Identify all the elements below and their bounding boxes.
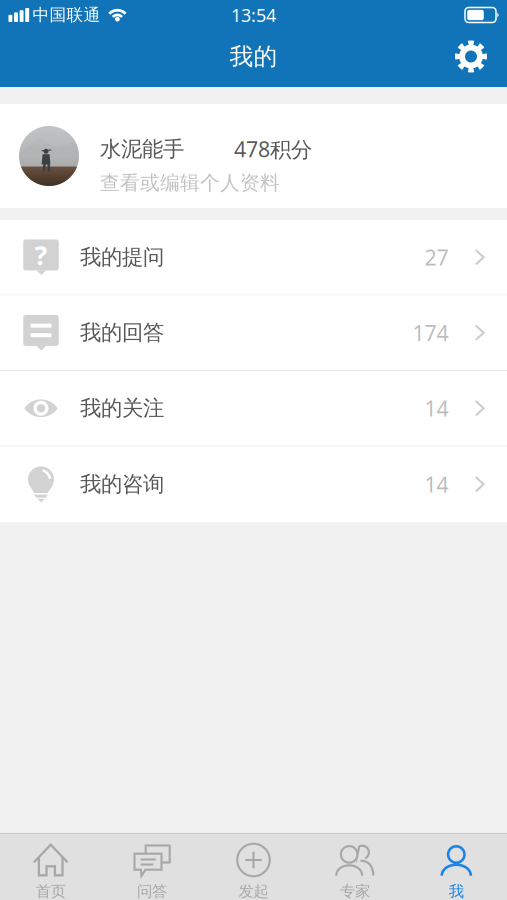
button[interactable]: Settings <box>442 30 500 87</box>
button[interactable]: 水泥能手 <box>0 104 507 208</box>
staticText: ? <box>34 237 47 273</box>
staticText: 我的咨询 <box>80 471 164 498</box>
button[interactable]: 我 <box>406 834 507 899</box>
staticText: 我的 <box>229 42 277 71</box>
staticText: 我 <box>449 882 464 900</box>
staticText: 478积分 <box>234 134 312 164</box>
staticText: 中国联通 <box>33 4 101 25</box>
staticText: 14 <box>424 470 448 499</box>
staticText: 问答 <box>137 882 167 900</box>
staticText: 27 <box>424 243 448 272</box>
staticText: 174 <box>412 318 448 347</box>
staticText: 首页 <box>36 882 66 900</box>
staticText: 水泥能手 <box>100 136 184 162</box>
button[interactable]: 发起 <box>203 834 304 899</box>
button[interactable]: 专家 <box>304 834 406 899</box>
button[interactable]: 我的关注 <box>0 371 507 446</box>
staticText: 14 <box>424 394 448 423</box>
staticText: 查看或编辑个人资料 <box>100 171 280 195</box>
button[interactable]: ? <box>0 220 507 295</box>
button[interactable]: 问答 <box>101 834 203 899</box>
staticText: 我的回答 <box>80 319 164 346</box>
button[interactable]: 首页 <box>0 834 101 899</box>
button[interactable]: 我的回答 <box>0 295 507 371</box>
staticText: 发起 <box>238 882 268 900</box>
staticText: 我的提问 <box>80 244 164 271</box>
staticText: 我的关注 <box>80 395 164 422</box>
staticText: 专家 <box>340 882 370 900</box>
button[interactable]: 我的咨询 <box>0 446 507 522</box>
staticText: 13:54 <box>231 3 276 27</box>
